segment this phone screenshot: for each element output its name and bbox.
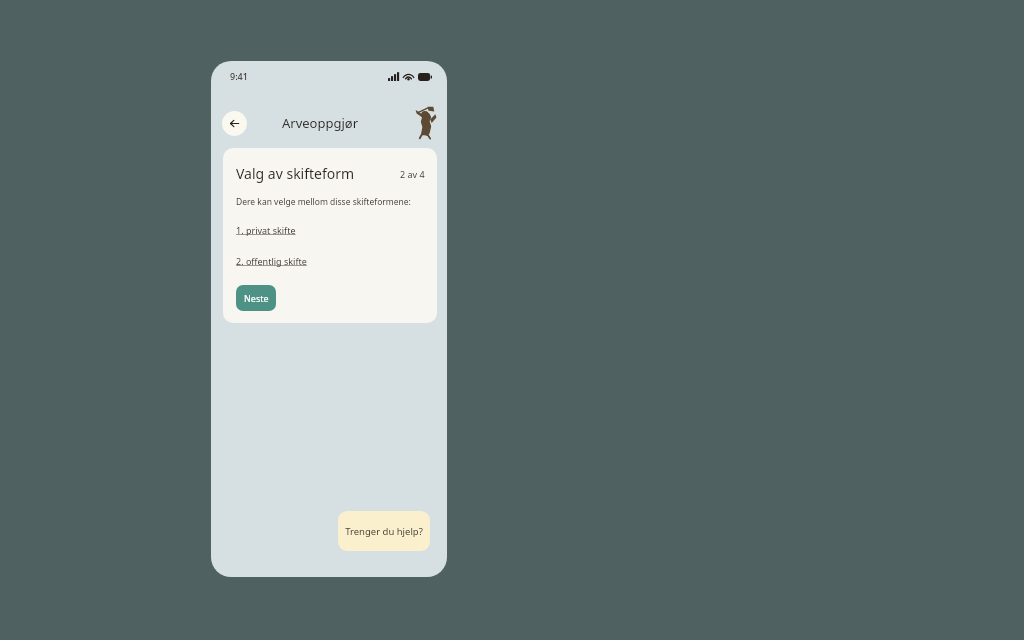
button[interactable]: 1. privat skifte <box>236 224 296 236</box>
button[interactable]: Tilbake <box>222 111 247 136</box>
staticText: 1. privat skifte <box>236 224 296 236</box>
button[interactable]: Neste <box>236 285 276 311</box>
button[interactable]: 2. offentlig skifte <box>236 255 307 267</box>
staticText: 9:41 <box>230 70 248 82</box>
staticText: 2. offentlig skifte <box>236 255 307 267</box>
button[interactable]: Trenger du hjelp? <box>338 511 430 551</box>
staticText: Valg av skifteform <box>236 164 355 183</box>
staticText: 2 av 4 <box>400 168 425 180</box>
staticText: Dere kan velge mellom disse skifteformen… <box>236 196 411 208</box>
staticText: Trenger du hjelp? <box>345 525 423 538</box>
staticText: Neste <box>244 292 269 304</box>
staticText: Arveoppgjør <box>282 114 359 132</box>
